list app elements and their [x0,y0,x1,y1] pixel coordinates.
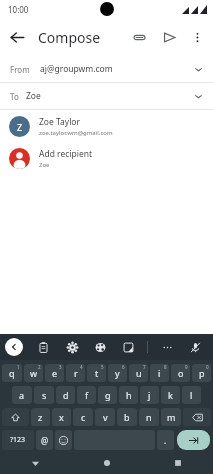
staticText: 5 [101,364,104,370]
staticText: g [105,389,111,401]
staticText: Zoe Taylor [39,116,81,128]
staticText: 2 [38,364,41,370]
button[interactable]: t [87,364,106,382]
button[interactable]: c [73,408,93,426]
button[interactable]: Home [71,452,142,474]
staticText: j [148,389,151,401]
button[interactable]: e [45,364,64,382]
staticText: ?123 [10,435,26,445]
button[interactable]: More [158,338,176,356]
staticText: m [167,411,176,423]
button[interactable]: Emoji [55,430,72,450]
staticText: Add recipient [39,148,93,160]
staticText: b [124,411,130,423]
button[interactable]: Shift [2,408,29,426]
button[interactable]: Attach file [124,22,154,52]
button[interactable]: Clipboard [34,338,52,356]
staticText: 1 [17,364,20,370]
button[interactable]: b [117,408,137,426]
button[interactable]: g [98,386,117,404]
button[interactable]: k [161,386,180,404]
staticText: s [42,389,47,401]
staticText: k [168,389,173,401]
staticText: d [63,389,69,401]
staticText: 7 [143,364,146,370]
staticText: t [95,367,99,379]
button[interactable]: p [192,364,211,382]
staticText: To [10,91,19,102]
staticText: e [52,367,58,379]
button[interactable]: Backspace [183,408,211,426]
button[interactable]: z [31,408,50,426]
button[interactable]: More options [184,24,210,50]
button[interactable]: One-handed mode [119,338,137,356]
button[interactable]: i [150,364,169,382]
button[interactable]: Settings [63,338,81,356]
button[interactable]: w [24,364,43,382]
button[interactable]: a [12,386,32,404]
button[interactable]: Back [0,20,34,54]
staticText: n [146,411,152,423]
button[interactable]: y [108,364,127,382]
button[interactable]: l [182,386,201,404]
button[interactable]: n [139,408,159,426]
button[interactable]: To [0,83,213,109]
button[interactable]: o [171,364,190,382]
button[interactable]: Voice input off [186,338,204,356]
button[interactable]: . [157,430,174,450]
staticText: v [103,411,108,423]
staticText: h [126,389,132,401]
staticText: a [19,389,25,401]
staticText: c [81,411,86,423]
button[interactable]: v [95,408,115,426]
staticText: From [10,64,30,75]
staticText: 0 [206,364,209,370]
staticText: zoe.taylor.wm@gmail.com [39,129,113,137]
staticText: aj@groupwm.com [40,63,113,75]
button[interactable]: j [140,386,159,404]
button[interactable]: m [161,408,181,426]
staticText: Zoe [26,90,41,102]
button[interactable]: d [56,386,75,404]
button[interactable]: Add recipient [0,142,213,174]
button[interactable]: Collapse toolbar [5,338,23,356]
button[interactable]: f [77,386,96,404]
staticText: r [74,367,78,379]
staticText: 8 [164,364,167,370]
staticText: @ [41,435,49,446]
button[interactable]: q [2,364,22,382]
button[interactable]: Enter [177,430,210,450]
button[interactable]: Send [154,22,184,52]
button[interactable]: Back [0,452,71,474]
staticText: 10:00 [8,4,29,15]
button[interactable]: @ [36,430,53,450]
staticText: Z [17,121,23,133]
button[interactable]: r [66,364,85,382]
staticText: Zoe [39,161,50,169]
staticText: o [178,367,184,379]
staticText: Compose [38,28,101,47]
staticText: f [85,389,89,401]
staticText: z [38,411,43,423]
button[interactable]: Recent apps [142,452,213,474]
staticText: w [30,367,38,379]
button[interactable]: x [52,408,71,426]
button[interactable]: h [119,386,138,404]
button[interactable]: ?123 [2,430,34,450]
button[interactable]: From [0,56,213,82]
button[interactable]: Themes [91,338,109,356]
button[interactable]: s [34,386,54,404]
staticText: x [59,411,64,423]
staticText: q [9,367,15,379]
button[interactable]: Z [0,110,213,142]
staticText: y [115,367,120,379]
staticText: 6 [122,364,125,370]
staticText: p [199,367,205,379]
staticText: 9 [185,364,188,370]
staticText: 3 [59,364,62,370]
button[interactable]: u [129,364,148,382]
staticText: 4 [80,364,83,370]
staticText: . [164,435,167,446]
staticText: u [136,367,142,379]
